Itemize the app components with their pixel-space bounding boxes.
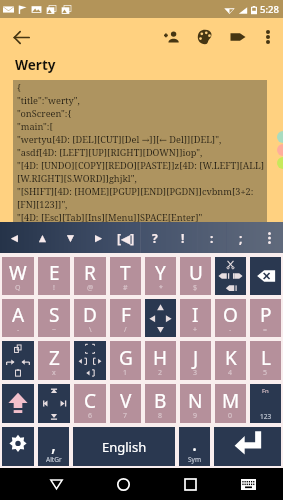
staticText: H	[153, 345, 168, 371]
staticText: ;	[239, 230, 243, 246]
staticText: "main":[	[17, 120, 53, 133]
staticText: G	[119, 345, 133, 371]
staticText: O	[223, 302, 238, 328]
button[interactable]: H	[145, 341, 176, 380]
button[interactable]: Home	[107, 468, 139, 500]
staticText: I	[192, 302, 199, 328]
button[interactable]: Add user	[155, 20, 188, 54]
button[interactable]	[215, 257, 246, 295]
button[interactable]: More keyboard options	[255, 222, 283, 253]
button[interactable]: Theme colours	[188, 20, 221, 54]
button[interactable]: D	[74, 299, 106, 337]
staticText: 3	[193, 368, 198, 378]
button[interactable]: T	[110, 257, 141, 295]
staticText: {	[17, 81, 21, 94]
staticText: -	[17, 325, 20, 335]
staticText: ◀	[11, 233, 18, 243]
staticText: D	[83, 302, 97, 328]
button[interactable]	[74, 341, 106, 380]
staticText: A	[12, 302, 25, 328]
button[interactable]	[2, 384, 34, 423]
staticText: 6	[88, 411, 93, 421]
staticText: F	[121, 302, 131, 328]
button[interactable]: ▲	[28, 222, 56, 253]
button[interactable]: K	[215, 341, 246, 380]
button[interactable]: ?	[141, 222, 169, 253]
staticText: #	[123, 283, 128, 293]
staticText: ~	[52, 325, 57, 335]
staticText: 1	[123, 368, 128, 378]
button[interactable]: I	[180, 299, 211, 337]
button[interactable]: Lime theme	[277, 157, 283, 169]
button[interactable]: More options	[254, 20, 282, 54]
button[interactable]: ▼	[56, 222, 84, 253]
button[interactable]: P	[250, 299, 281, 337]
button[interactable]: O	[215, 299, 246, 337]
staticText: /	[124, 325, 127, 335]
button[interactable]: L	[250, 341, 281, 380]
button[interactable]: J	[180, 341, 211, 380]
staticText: $	[193, 283, 198, 293]
button[interactable]: N	[180, 384, 211, 423]
staticText: C	[84, 388, 97, 414]
staticText: x	[52, 368, 56, 378]
button[interactable]: E	[38, 257, 70, 295]
staticText: Q	[15, 283, 21, 293]
staticText: [W.RIGHT][S.WORD]]ghjkl",	[17, 172, 137, 185]
button[interactable]: Z	[38, 341, 70, 380]
staticText: *	[159, 283, 163, 293]
button[interactable]: C	[74, 384, 106, 423]
staticText: Z	[49, 345, 60, 371]
button[interactable]: Change keyboard	[232, 468, 264, 500]
staticText: U	[189, 260, 203, 286]
staticText: Sym	[188, 455, 201, 464]
staticText: S	[49, 302, 60, 328]
button[interactable]: U	[180, 257, 211, 295]
staticText: 5	[263, 368, 268, 378]
button[interactable]	[214, 427, 281, 466]
button[interactable]: Navigate up	[6, 22, 36, 52]
button[interactable]: !	[169, 222, 197, 253]
button[interactable]: ,	[38, 427, 69, 466]
button[interactable]: .	[179, 427, 210, 466]
staticText: J	[193, 345, 199, 371]
staticText: "onScreen":{	[17, 107, 72, 120]
button[interactable]: Fn	[250, 384, 281, 423]
button[interactable]: G	[110, 341, 141, 380]
staticText: ▼	[67, 233, 74, 243]
button[interactable]	[250, 257, 281, 295]
button[interactable]: Back	[40, 468, 72, 500]
button[interactable]: R	[74, 257, 106, 295]
staticText: M	[222, 388, 240, 414]
button[interactable]: M	[215, 384, 246, 423]
button[interactable]: A	[2, 299, 34, 337]
button[interactable]	[2, 427, 34, 466]
staticText: 5:28	[260, 3, 279, 16]
button[interactable]: Green theme	[277, 131, 283, 143]
button[interactable]: Y	[145, 257, 176, 295]
staticText: !	[181, 230, 185, 246]
staticText: 9	[193, 411, 198, 421]
button[interactable]: ;	[227, 222, 255, 253]
button[interactable]: F	[110, 299, 141, 337]
button[interactable]: W	[2, 257, 34, 295]
staticText: \	[89, 325, 92, 335]
staticText: AltGr	[46, 455, 62, 464]
button[interactable]	[38, 384, 70, 423]
button[interactable]: Label	[221, 20, 254, 54]
staticText: [◀]	[117, 230, 135, 246]
button[interactable]: English	[73, 427, 175, 466]
button[interactable]: Red theme	[277, 144, 283, 156]
button[interactable]: [◀]	[112, 222, 140, 253]
button[interactable]: Recent apps	[174, 468, 206, 500]
staticText: @	[87, 283, 94, 293]
button[interactable]: V	[110, 384, 141, 423]
button[interactable]	[2, 341, 34, 380]
button[interactable]: B	[145, 384, 176, 423]
staticText: 7	[123, 411, 128, 421]
button[interactable]: ▶	[84, 222, 112, 253]
button[interactable]: S	[38, 299, 70, 337]
button[interactable]: ◀	[0, 222, 28, 253]
button[interactable]	[145, 299, 176, 337]
button[interactable]: :	[198, 222, 226, 253]
